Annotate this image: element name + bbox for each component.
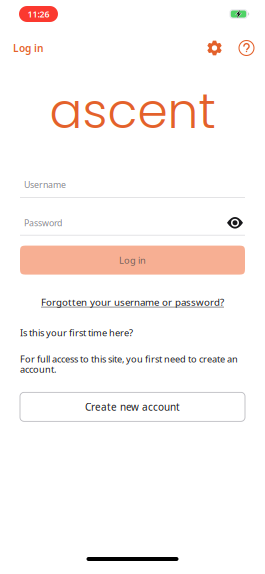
staticText: Create new account	[85, 400, 180, 413]
button[interactable]: Show password	[227, 216, 245, 230]
button[interactable]: Settings	[203, 36, 226, 59]
staticText: Username	[24, 179, 66, 190]
button[interactable]: Create new account	[20, 392, 245, 421]
staticText: 11:26	[27, 8, 49, 20]
button[interactable]: Log in	[20, 246, 245, 275]
button[interactable]: Log in	[13, 36, 51, 60]
staticText: Log in	[13, 41, 43, 55]
staticText: For full access to this site, you first …	[20, 353, 238, 365]
staticText: ascent	[49, 77, 215, 145]
staticText: Password	[24, 217, 62, 229]
staticText: Log in	[119, 254, 146, 266]
button[interactable]: Forgotten your username or password?	[41, 296, 224, 308]
staticText: account.	[20, 363, 56, 375]
staticText: Is this your first time here?	[20, 326, 133, 339]
button[interactable]: Help	[235, 36, 258, 59]
staticText: Forgotten your username or password?	[41, 296, 224, 308]
